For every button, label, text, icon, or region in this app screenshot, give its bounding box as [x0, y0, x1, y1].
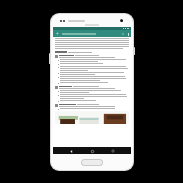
- button[interactable]: Back: [68, 148, 74, 154]
- button[interactable]: [55, 104, 129, 107]
- button[interactable]: [55, 86, 129, 89]
- button[interactable]: Search: [121, 32, 125, 36]
- button[interactable]: Home: [89, 148, 95, 154]
- button[interactable]: Recent apps: [110, 148, 116, 154]
- button[interactable]: Home: [81, 159, 103, 166]
- button[interactable]: More options: [126, 32, 130, 36]
- button[interactable]: [55, 55, 129, 58]
- button[interactable]: Back: [55, 31, 60, 36]
